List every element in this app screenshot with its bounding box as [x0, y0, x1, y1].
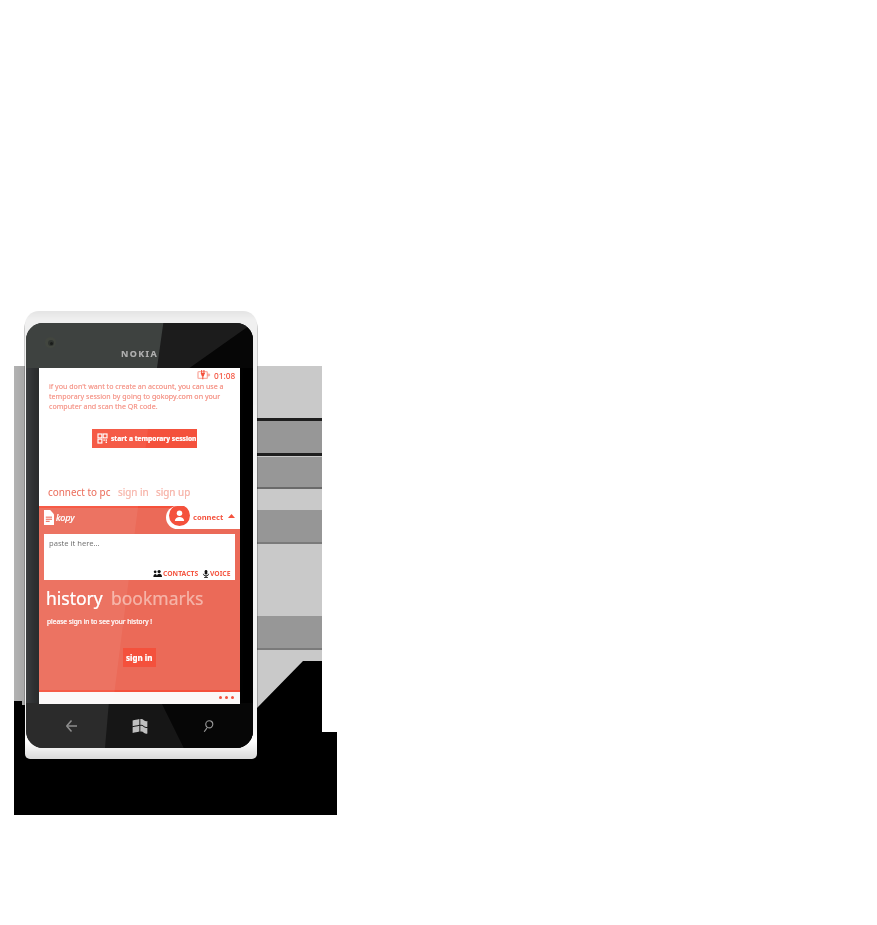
button[interactable]: VOICE [210, 569, 231, 578]
button[interactable]: More [219, 696, 234, 699]
staticText: please sign in to see your history ! [47, 617, 153, 626]
button[interactable]: Back [34, 703, 109, 748]
button[interactable]: CONTACTS [163, 569, 199, 578]
staticText: NOKIA [121, 347, 159, 359]
staticText: kopy [56, 511, 75, 523]
button[interactable]: sign in [123, 648, 156, 667]
staticText: if you don't want to create an account, … [49, 381, 224, 411]
button[interactable]: Search [171, 703, 248, 748]
staticText: connect [193, 512, 224, 522]
button[interactable]: paste it here... [44, 534, 235, 580]
button[interactable]: Start [109, 703, 171, 748]
button[interactable]: sign in [118, 485, 149, 498]
button[interactable]: connect to pc [48, 485, 111, 498]
staticText: start a temporary session [111, 434, 197, 443]
button[interactable]: history [46, 586, 103, 610]
staticText: sign in [126, 652, 153, 663]
staticText: 01:08 [214, 370, 236, 381]
button[interactable]: sign up [156, 485, 191, 498]
button[interactable]: connect [166, 506, 240, 529]
button[interactable]: start a temporary session [92, 429, 197, 448]
button[interactable]: bookmarks [111, 586, 204, 610]
staticText: paste it here... [49, 538, 100, 548]
